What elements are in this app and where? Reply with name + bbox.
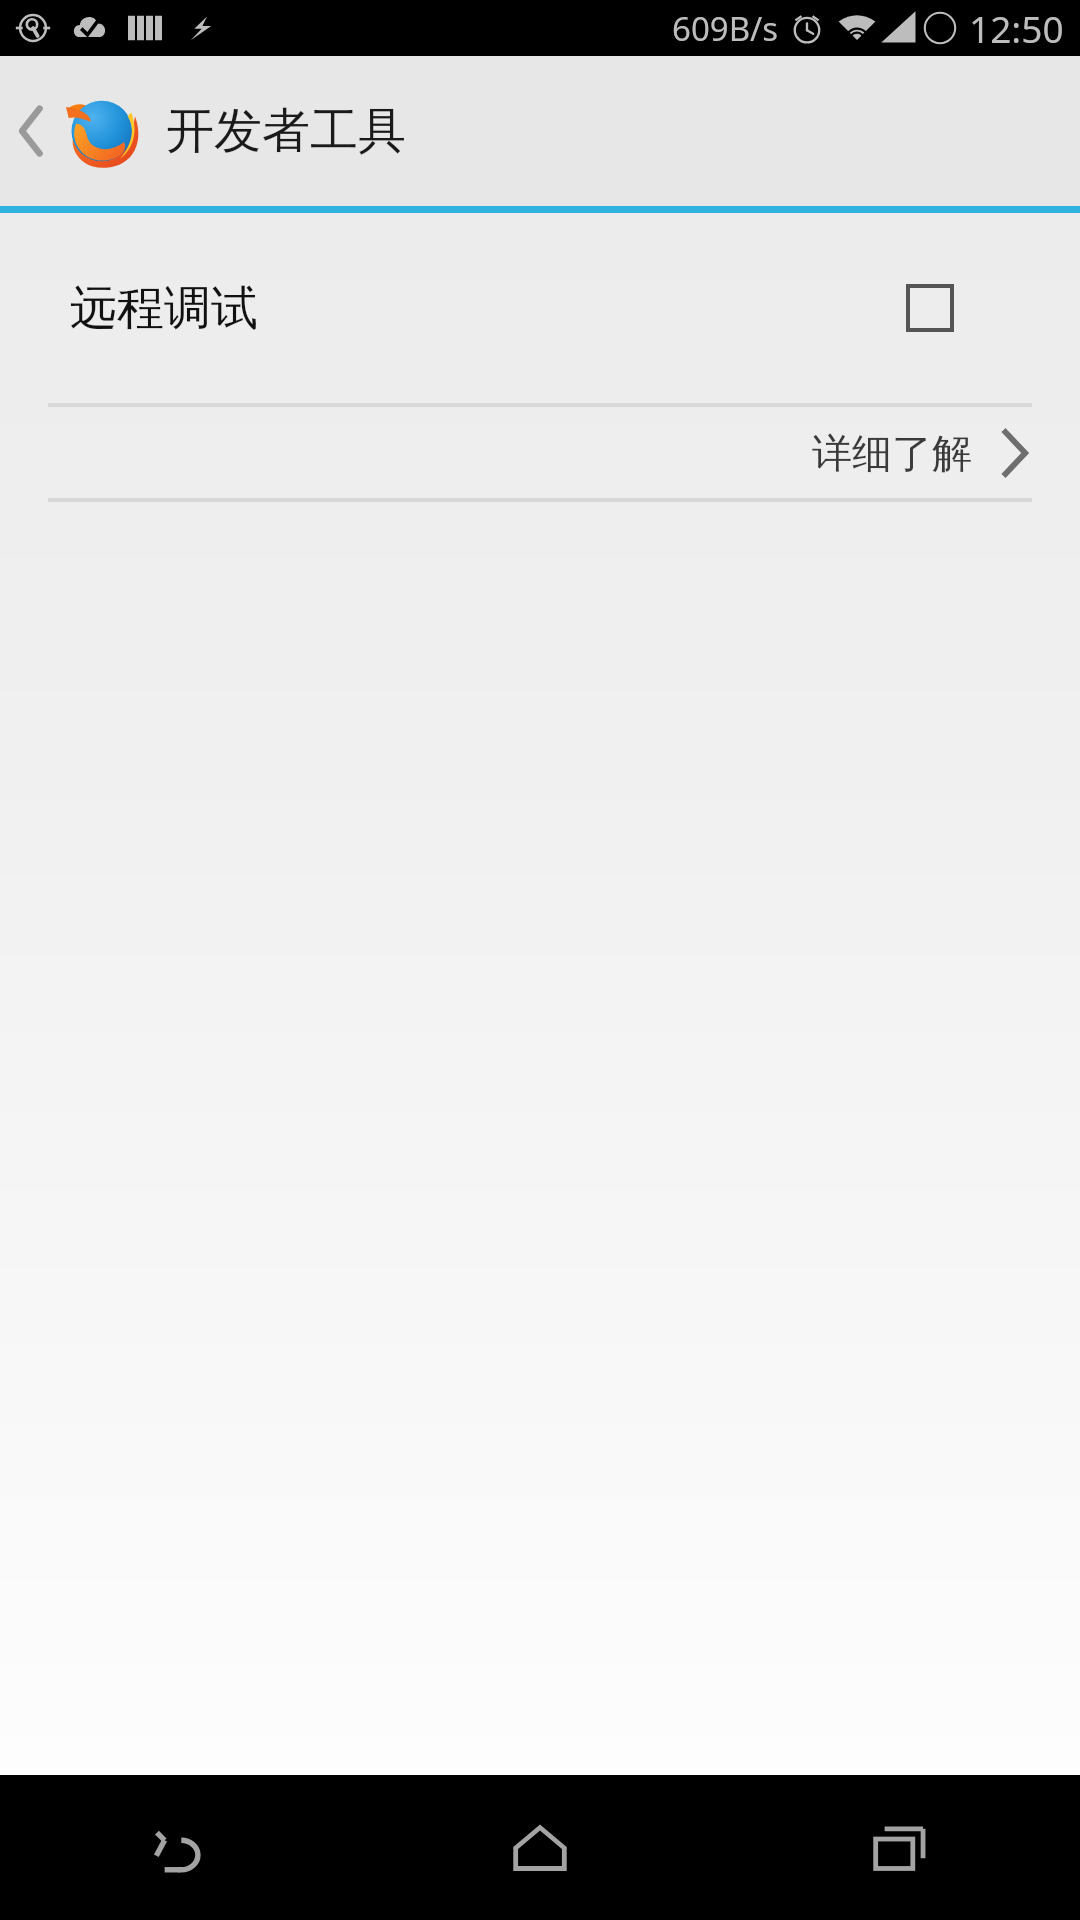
button[interactable]: 详细了解 <box>0 407 1080 498</box>
button[interactable]: Back <box>0 56 152 206</box>
button[interactable]: 远程调试 <box>0 213 1080 403</box>
button[interactable]: Back <box>0 1775 360 1920</box>
staticText: 609B/s <box>672 6 779 51</box>
button[interactable]: Home <box>360 1775 720 1920</box>
staticText: 详细了解 <box>812 428 972 478</box>
staticText: 开发者工具 <box>166 101 406 161</box>
button[interactable]: Recent apps <box>720 1775 1080 1920</box>
staticText: 12:50 <box>969 3 1064 53</box>
staticText: 远程调试 <box>70 279 906 338</box>
